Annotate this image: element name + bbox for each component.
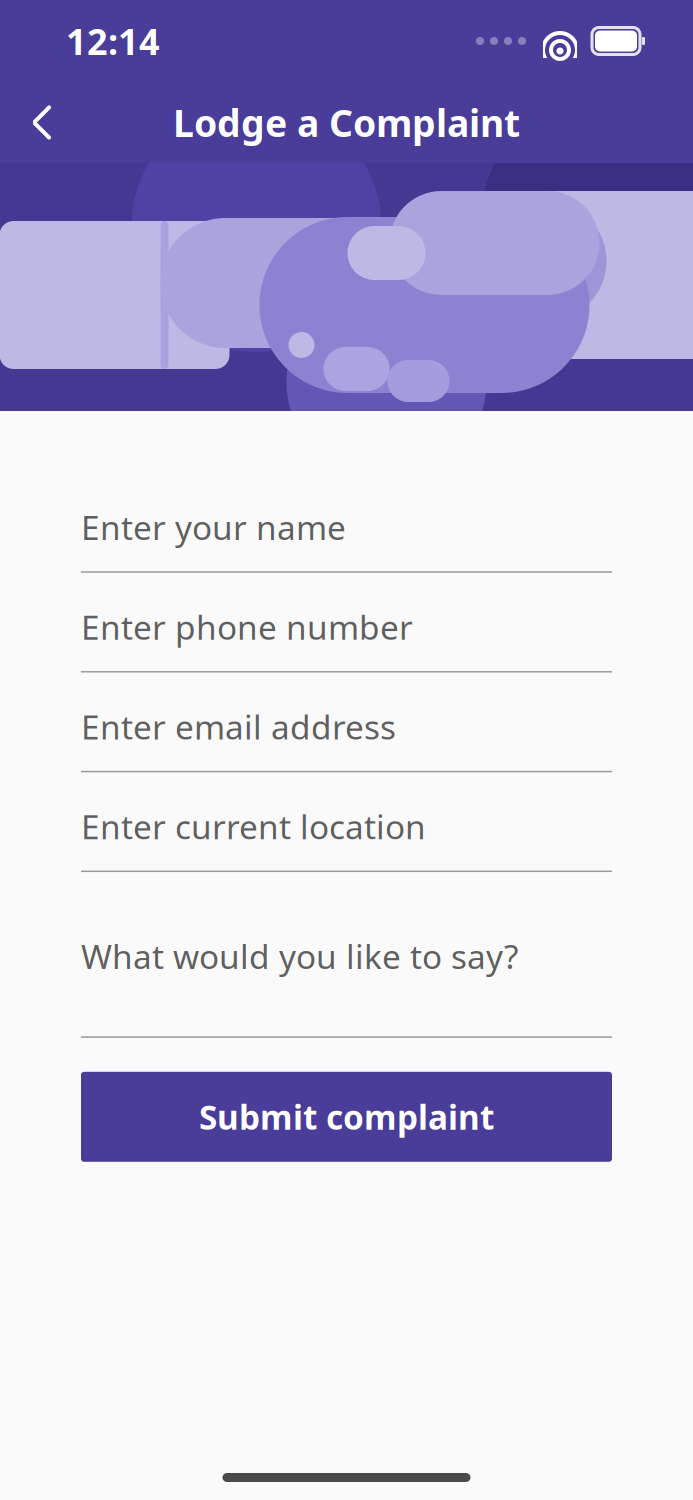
staticText: Enter phone number xyxy=(81,605,413,649)
button[interactable]: Back xyxy=(6,86,78,158)
button[interactable]: Enter current location xyxy=(81,804,612,872)
staticText: What would you like to say? xyxy=(81,934,518,978)
button[interactable]: Enter phone number xyxy=(81,605,612,673)
staticText: Enter email address xyxy=(81,704,396,749)
staticText: Lodge a Complaint xyxy=(173,98,520,147)
button[interactable]: Enter email address xyxy=(81,704,612,772)
staticText: 12:14 xyxy=(66,17,160,65)
button[interactable]: Enter your name xyxy=(81,505,612,573)
staticText: Submit complaint xyxy=(199,1095,494,1139)
staticText: Enter your name xyxy=(81,505,346,549)
staticText: Enter current location xyxy=(81,804,426,849)
button[interactable]: What would you like to say? xyxy=(81,934,612,1038)
button[interactable]: Submit complaint xyxy=(81,1072,612,1162)
